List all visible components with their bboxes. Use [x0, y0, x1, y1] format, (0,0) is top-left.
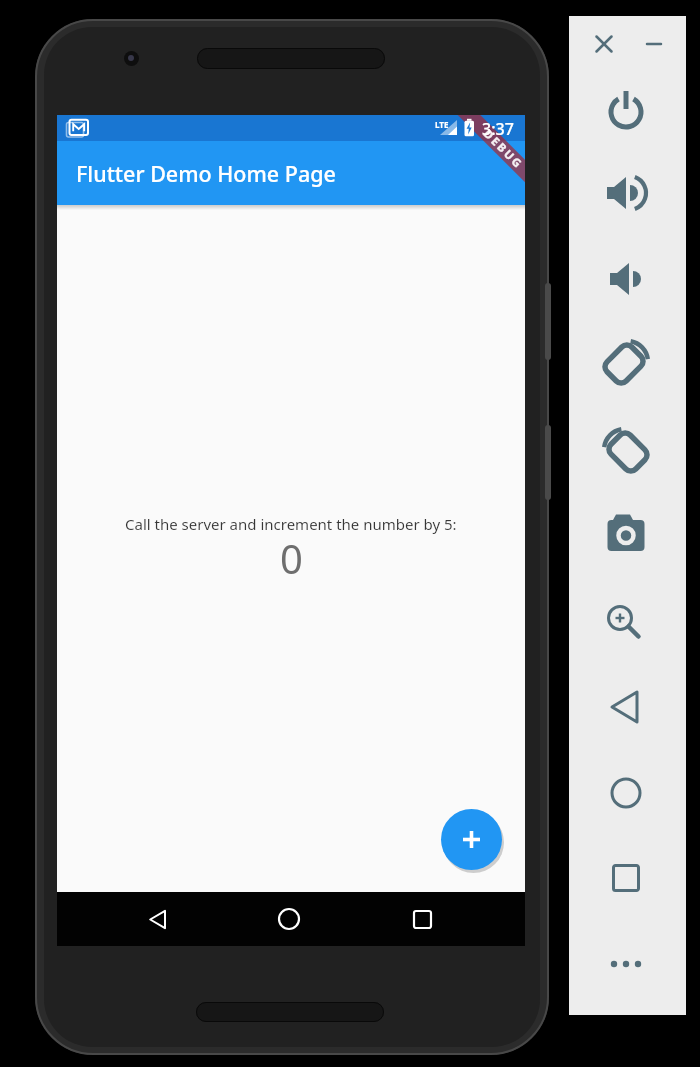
staticText: LTE: [435, 119, 449, 130]
button[interactable]: [593, 33, 615, 55]
button[interactable]: [605, 258, 647, 300]
staticText: Call the server and increment the number…: [125, 514, 457, 534]
button[interactable]: [441, 809, 502, 870]
button[interactable]: [605, 340, 647, 382]
button[interactable]: [605, 89, 647, 131]
button[interactable]: [605, 772, 647, 814]
button[interactable]: [605, 686, 647, 728]
staticText: 3:37: [482, 118, 514, 140]
button[interactable]: [605, 943, 647, 985]
button[interactable]: [404, 901, 440, 937]
button[interactable]: [643, 33, 665, 55]
button[interactable]: [605, 172, 647, 214]
button[interactable]: [605, 857, 647, 899]
staticText: DEBUG: [480, 126, 525, 173]
staticText: Flutter Demo Home Page: [76, 159, 336, 188]
button[interactable]: [271, 901, 307, 937]
button[interactable]: [605, 597, 647, 639]
staticText: 0: [280, 531, 303, 585]
button[interactable]: [605, 428, 647, 470]
button[interactable]: [605, 514, 647, 556]
button[interactable]: [140, 901, 176, 937]
